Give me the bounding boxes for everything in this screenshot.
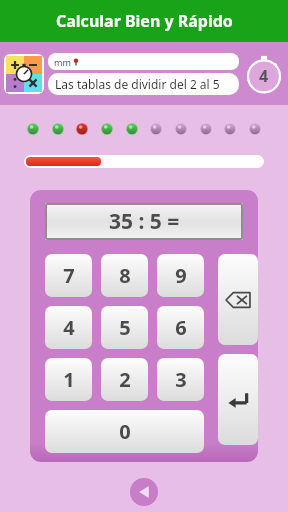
- button[interactable]: 35 : 5 =: [45, 203, 243, 240]
- button[interactable]: 8: [101, 254, 148, 297]
- button[interactable]: 9: [157, 254, 204, 297]
- button[interactable]: 3: [157, 358, 204, 401]
- button[interactable]: 0: [45, 410, 204, 453]
- staticText: 9: [175, 262, 187, 289]
- staticText: 1: [63, 366, 75, 393]
- button[interactable]: 6: [157, 306, 204, 349]
- staticText: 6: [175, 314, 187, 341]
- button[interactable]: 5: [101, 306, 148, 349]
- staticText: 5: [119, 314, 131, 341]
- staticText: 8: [119, 262, 131, 289]
- button[interactable]: Las tablas de dividir del 2 al 5: [48, 73, 239, 95]
- button[interactable]: 2: [101, 358, 148, 401]
- staticText: mm: [54, 56, 71, 68]
- staticText: 4: [259, 65, 269, 87]
- button[interactable]: Level 4: [244, 54, 284, 94]
- button[interactable]: mm: [48, 53, 239, 70]
- button[interactable]: 7: [45, 254, 92, 297]
- staticText: Las tablas de dividir del 2 al 5: [55, 76, 220, 92]
- button[interactable]: 4: [45, 306, 92, 349]
- button[interactable]: 1: [45, 358, 92, 401]
- button[interactable]: Enter: [218, 354, 258, 445]
- staticText: 2: [119, 366, 131, 393]
- button[interactable]: App icon: [6, 56, 42, 92]
- staticText: Calcular Bien y Rápido: [56, 10, 233, 32]
- staticText: 3: [175, 366, 187, 393]
- button[interactable]: Back: [130, 478, 158, 506]
- staticText: 0: [119, 418, 131, 445]
- staticText: 35 : 5 =: [109, 207, 180, 236]
- button[interactable]: Backspace: [218, 254, 258, 345]
- staticText: 4: [63, 314, 75, 341]
- staticText: 7: [63, 262, 75, 289]
